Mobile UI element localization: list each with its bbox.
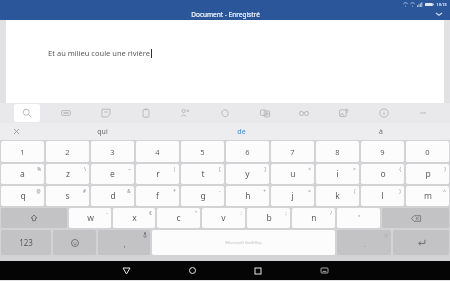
button[interactable]: q <box>1 186 44 206</box>
button[interactable]: More <box>410 104 436 122</box>
button[interactable]: ' <box>337 208 380 228</box>
staticText: | <box>173 166 176 172</box>
button[interactable]: z <box>46 164 89 184</box>
button[interactable] <box>53 230 96 255</box>
staticText: & <box>127 188 131 194</box>
button[interactable] <box>1 208 67 228</box>
staticText: , <box>123 238 126 249</box>
staticText: k <box>335 190 340 202</box>
button[interactable] <box>393 230 449 255</box>
button[interactable]: 4 <box>136 141 179 162</box>
button[interactable]: h <box>226 186 269 206</box>
staticText: < <box>308 166 311 172</box>
staticText: p <box>425 168 431 180</box>
staticText: a <box>20 168 25 180</box>
button[interactable]: More options <box>434 9 444 19</box>
button[interactable]: Clipboard <box>133 104 159 122</box>
button[interactable]: Translate <box>172 104 198 122</box>
button[interactable]: j <box>271 186 314 206</box>
button[interactable]: s <box>46 186 89 206</box>
staticText: z <box>66 168 70 180</box>
button[interactable]: y <box>226 164 269 184</box>
button[interactable]: b <box>247 208 290 228</box>
button[interactable]: k <box>316 186 359 206</box>
button[interactable] <box>382 208 449 228</box>
button[interactable]: 5 <box>181 141 224 162</box>
button[interactable]: u <box>271 164 314 184</box>
staticText: [ <box>219 166 221 172</box>
staticText: 2 <box>65 147 70 157</box>
staticText: 3 <box>110 147 115 157</box>
button[interactable]: w <box>69 208 111 228</box>
button[interactable]: Info <box>371 104 397 122</box>
button[interactable]: 0 <box>406 141 449 162</box>
button[interactable]: Emoji search <box>291 104 317 122</box>
staticText: f <box>156 190 159 202</box>
button[interactable]: Recent apps <box>225 261 291 280</box>
staticText: h <box>245 190 251 202</box>
button[interactable]: Home <box>159 261 225 280</box>
button[interactable]: de <box>172 123 311 140</box>
button[interactable]: a <box>1 164 44 184</box>
staticText: t <box>201 168 205 180</box>
button[interactable]: Et au milieu coule une rivière <box>6 20 444 103</box>
staticText: ~ <box>128 166 131 172</box>
button[interactable]: 6 <box>226 141 269 162</box>
staticText: qui <box>97 127 108 137</box>
button[interactable]: Image <box>331 104 357 122</box>
button[interactable]: 2 <box>46 141 89 162</box>
button[interactable]: Search <box>14 104 40 122</box>
button[interactable]: e <box>91 164 134 184</box>
staticText: 0 <box>425 147 430 157</box>
staticText: 5 <box>200 147 205 157</box>
staticText: 8 <box>335 147 340 157</box>
staticText: Document - Enregistré <box>191 10 260 19</box>
staticText: r <box>156 168 160 180</box>
button[interactable]: GIF <box>212 104 238 122</box>
button[interactable]: Back <box>93 261 159 280</box>
button[interactable]: Keyboard <box>53 104 79 122</box>
staticText: y <box>245 168 250 180</box>
button[interactable]: v <box>202 208 245 228</box>
button[interactable]: Stickers <box>93 104 119 122</box>
button[interactable]: qui <box>32 123 172 140</box>
staticText: j <box>291 190 294 202</box>
button[interactable]: Close suggestions <box>0 123 32 140</box>
staticText: Microsoft SwiftKey <box>225 240 262 246</box>
button[interactable]: 1 <box>1 141 44 162</box>
button[interactable]: r <box>136 164 179 184</box>
button[interactable]: Switch keyboard <box>291 261 357 280</box>
button[interactable]: à <box>311 123 450 140</box>
button[interactable]: , <box>98 230 150 255</box>
button[interactable]: i <box>316 164 359 184</box>
button[interactable]: t <box>181 164 224 184</box>
staticText: \ <box>84 166 86 172</box>
button[interactable]: Microsoft SwiftKey <box>152 230 335 255</box>
button[interactable]: 9 <box>361 141 404 162</box>
button[interactable]: p <box>406 164 449 184</box>
button[interactable]: f <box>136 186 179 206</box>
staticText: m <box>424 190 432 202</box>
button[interactable]: m <box>406 186 449 206</box>
staticText: - <box>106 210 108 216</box>
button[interactable]: l <box>361 186 404 206</box>
button[interactable]: c <box>157 208 200 228</box>
staticText: à <box>379 127 383 137</box>
button[interactable]: 8 <box>316 141 359 162</box>
staticText: 123 <box>19 237 33 248</box>
button[interactable]: x <box>113 208 155 228</box>
button[interactable]: d <box>91 186 134 206</box>
button[interactable]: 123 <box>1 230 51 255</box>
button[interactable]: Camera <box>252 104 278 122</box>
button[interactable]: 7 <box>271 141 314 162</box>
button[interactable]: g <box>181 186 224 206</box>
staticText: 4 <box>155 147 160 157</box>
button[interactable]: n <box>292 208 335 228</box>
staticText: @ <box>36 188 41 194</box>
button[interactable]: o <box>361 164 404 184</box>
button[interactable]: 3 <box>91 141 134 162</box>
staticText: 1 <box>20 147 25 157</box>
staticText: > <box>353 166 356 172</box>
staticText: o <box>380 168 386 180</box>
